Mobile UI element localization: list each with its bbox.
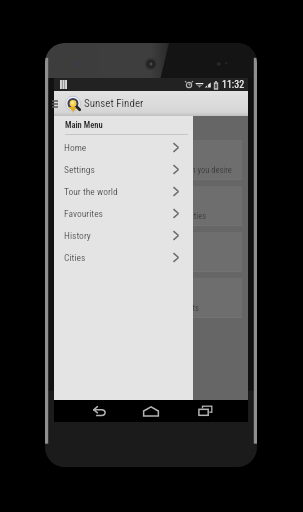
button[interactable]: Home: [54, 136, 193, 158]
staticText: Recently visited sunsets: [118, 303, 199, 313]
button[interactable]: Recently visited sunsets: [54, 278, 248, 324]
staticText: Favourites: [64, 208, 103, 219]
staticText: Sunset Finder: [84, 97, 144, 110]
button[interactable]: Tour the world: [54, 180, 193, 202]
button[interactable]: See your favourites: [54, 232, 248, 278]
staticText: Browse the world's cities: [123, 211, 207, 221]
staticText: Find any sunset location you desire: [114, 165, 232, 175]
staticText: See your favourites: [125, 257, 190, 267]
staticText: History: [64, 230, 91, 241]
button[interactable]: Favourites: [54, 202, 193, 224]
staticText: 11:32: [222, 79, 245, 91]
button[interactable]: Find any sunset location you desire: [54, 140, 248, 186]
button[interactable]: Recent apps: [188, 400, 222, 422]
staticText: Main Menu: [65, 120, 103, 130]
button[interactable]: Back: [81, 400, 115, 422]
staticText: Home: [64, 142, 87, 153]
button[interactable]: Browse the world's cities: [54, 186, 248, 232]
button[interactable]: Home: [134, 400, 168, 422]
staticText: Cities: [64, 252, 86, 263]
button[interactable]: Sunset Finder: [54, 91, 248, 116]
button[interactable]: Cities: [54, 246, 193, 268]
staticText: Settings: [64, 164, 95, 175]
button[interactable]: Settings: [54, 158, 193, 180]
button[interactable]: History: [54, 224, 193, 246]
staticText: Tour the world: [64, 186, 118, 197]
